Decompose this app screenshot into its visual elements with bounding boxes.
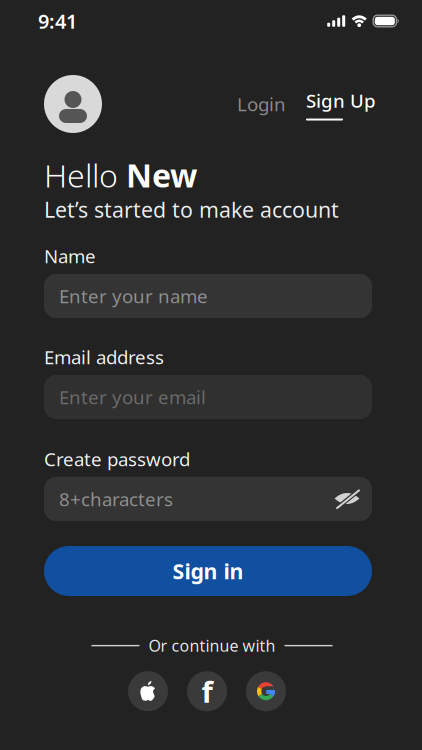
staticText: Email address	[44, 345, 164, 369]
button[interactable]: Continue with Apple	[128, 671, 168, 711]
staticText: Hello	[44, 154, 126, 196]
staticText: Enter your email	[59, 385, 206, 409]
staticText: Create password	[44, 447, 190, 471]
staticText: Enter your name	[59, 284, 208, 308]
button[interactable]: Enter your name	[44, 274, 372, 318]
staticText: Sign Up	[306, 88, 376, 113]
button[interactable]: Continue with Google	[246, 671, 286, 711]
staticText: New	[126, 154, 197, 196]
staticText: Name	[44, 244, 96, 268]
button[interactable]: Sign Up	[306, 87, 376, 120]
staticText: Sign in	[172, 557, 243, 585]
staticText: Let’s started to make account	[44, 195, 339, 224]
button[interactable]: Login	[237, 91, 286, 117]
staticText: 8+characters	[59, 487, 173, 511]
staticText: f	[201, 672, 212, 711]
staticText: Login	[237, 92, 286, 116]
button[interactable]: Enter your email	[44, 375, 372, 419]
button[interactable]: Continue with Facebook	[187, 671, 227, 711]
button[interactable]: 8+characters	[44, 477, 372, 521]
button[interactable]: Sign in	[44, 546, 372, 596]
staticText: 9:41	[38, 8, 77, 34]
staticText: Or continue with	[148, 635, 275, 656]
